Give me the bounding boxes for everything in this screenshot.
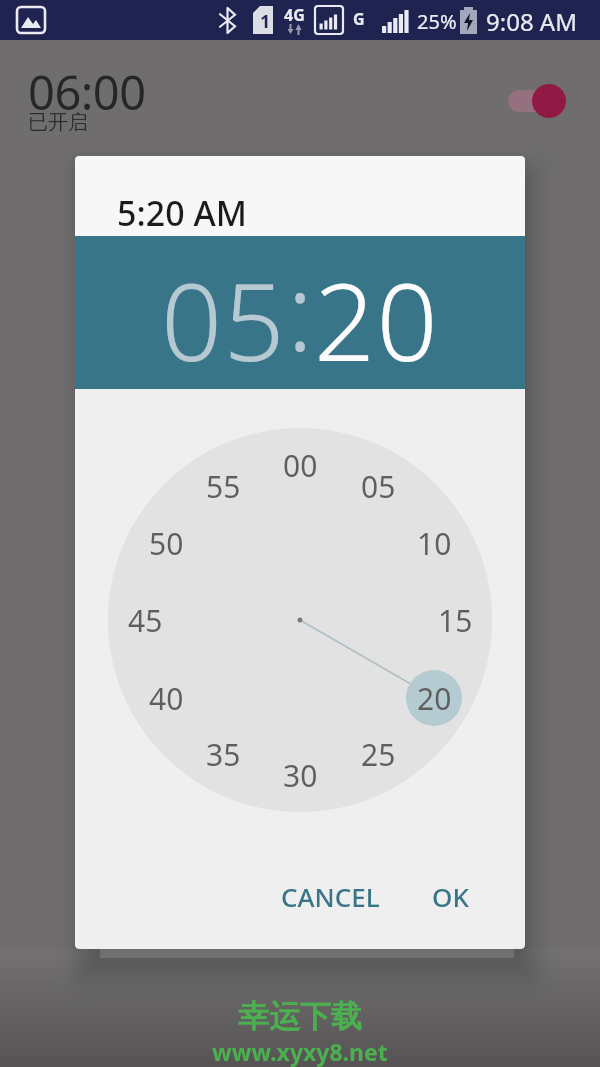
button[interactable]: 55 <box>188 464 258 508</box>
staticText: 05 <box>161 247 287 393</box>
staticText: 35 <box>206 734 241 775</box>
button[interactable]: 25 <box>343 732 413 776</box>
staticText: CANCEL <box>281 879 380 914</box>
button[interactable]: CANCEL <box>273 871 388 922</box>
staticText: 40 <box>149 678 184 719</box>
staticText: 4G <box>284 4 305 26</box>
staticText: 25 <box>361 734 396 775</box>
staticText: 9:08 AM <box>486 5 577 38</box>
staticText: 25% <box>417 8 457 35</box>
staticText: 30 <box>283 755 318 796</box>
staticText: : <box>287 237 314 383</box>
button[interactable]: 35 <box>188 732 258 776</box>
staticText: 15 <box>438 600 473 641</box>
staticText: 10 <box>417 523 452 564</box>
button[interactable]: OK <box>424 871 477 922</box>
staticText: 45 <box>128 600 163 641</box>
button[interactable] <box>406 670 462 726</box>
staticText: 幸运下载 <box>238 997 362 1036</box>
button[interactable]: 45 <box>110 598 180 642</box>
button[interactable]: 50 <box>131 521 201 565</box>
staticText: 20 <box>314 247 440 393</box>
staticText: 00 <box>283 445 318 486</box>
staticText: OK <box>432 879 469 914</box>
button[interactable]: 15 <box>420 598 490 642</box>
staticText: 5:20 AM <box>117 190 247 236</box>
button[interactable]: 00 <box>265 443 335 487</box>
staticText: 20 <box>417 678 452 719</box>
staticText: 05 <box>361 466 396 507</box>
button[interactable]: 10 <box>399 521 469 565</box>
button[interactable]: 40 <box>131 676 201 720</box>
button[interactable] <box>508 90 554 112</box>
staticText: 1 <box>260 9 271 34</box>
button[interactable]: 05 <box>343 464 413 508</box>
button[interactable]: 30 <box>265 753 335 797</box>
staticText: 55 <box>206 466 241 507</box>
staticText: 06:00 <box>28 60 146 124</box>
staticText: G <box>353 8 365 30</box>
button[interactable]: 20 <box>399 676 469 720</box>
staticText: www.xyxy8.net <box>212 1036 388 1067</box>
staticText: 已开启 <box>28 110 88 135</box>
staticText: 50 <box>149 523 184 564</box>
